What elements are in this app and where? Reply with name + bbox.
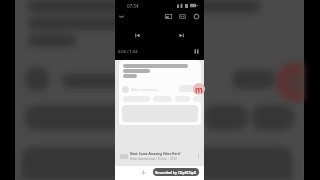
staticText: 07:34: [127, 3, 139, 9]
button[interactable]: Settings: [193, 13, 200, 20]
staticText: Next: Some Amazing Video Here!: [130, 152, 181, 156]
staticText: Add a comment...: [131, 87, 159, 92]
button[interactable]: Next: Some Amazing Video Here!: [115, 146, 204, 166]
button[interactable]: More options: [195, 153, 202, 160]
staticText: Some channel name · 51 min · 10:12: [130, 157, 177, 161]
staticText: Recorded by ClipXClipX: [155, 170, 197, 175]
button[interactable]: Collapse: [117, 12, 126, 21]
button[interactable]: Previous: [133, 31, 142, 40]
staticText: m: [195, 84, 203, 95]
button[interactable]: Fullscreen: [193, 48, 200, 55]
button[interactable]: Subtitles: [179, 13, 186, 20]
button[interactable]: Picture in picture: [165, 13, 172, 20]
button[interactable]: Next: [177, 31, 186, 40]
staticText: 0:06 / 1:04: [118, 49, 138, 54]
button[interactable]: Account: [193, 83, 205, 95]
